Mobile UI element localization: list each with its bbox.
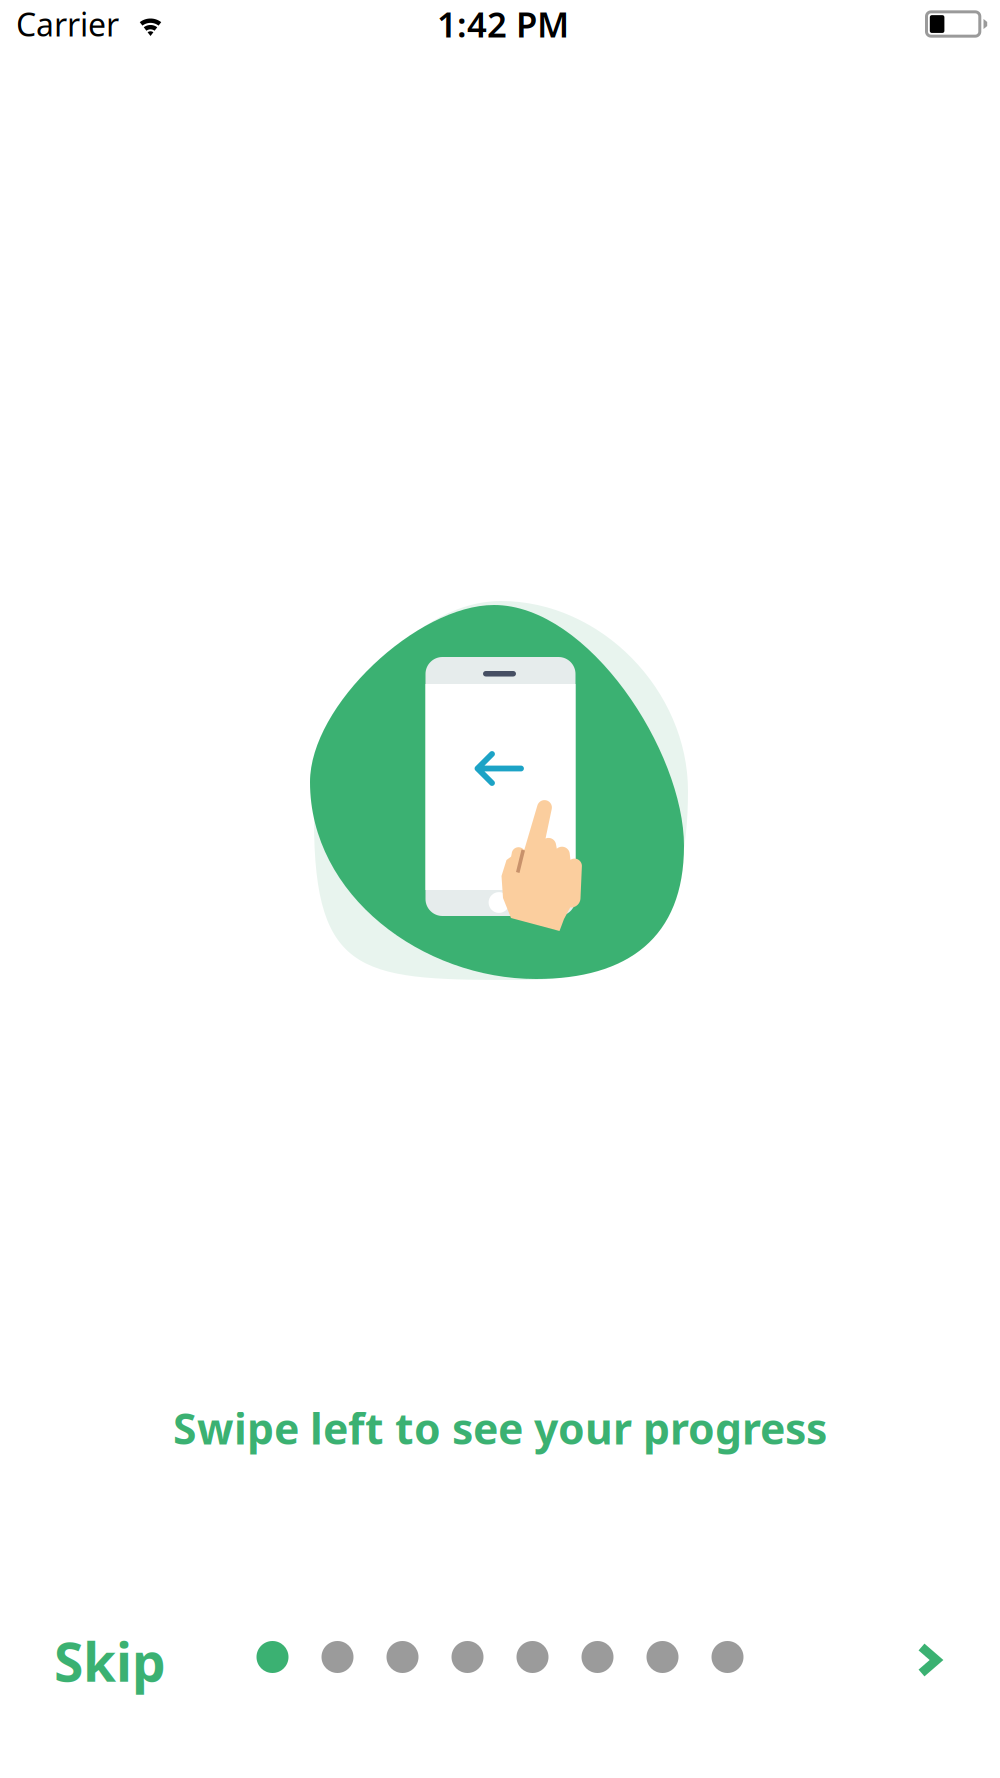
staticText: 1:42 PM [437,1,569,47]
staticText: Swipe left to see your progress [173,1400,827,1456]
staticText: Carrier [16,3,119,45]
button[interactable]: Next [886,1615,972,1705]
button[interactable]: Skip [35,1616,185,1706]
staticText: Skip [54,1626,166,1696]
